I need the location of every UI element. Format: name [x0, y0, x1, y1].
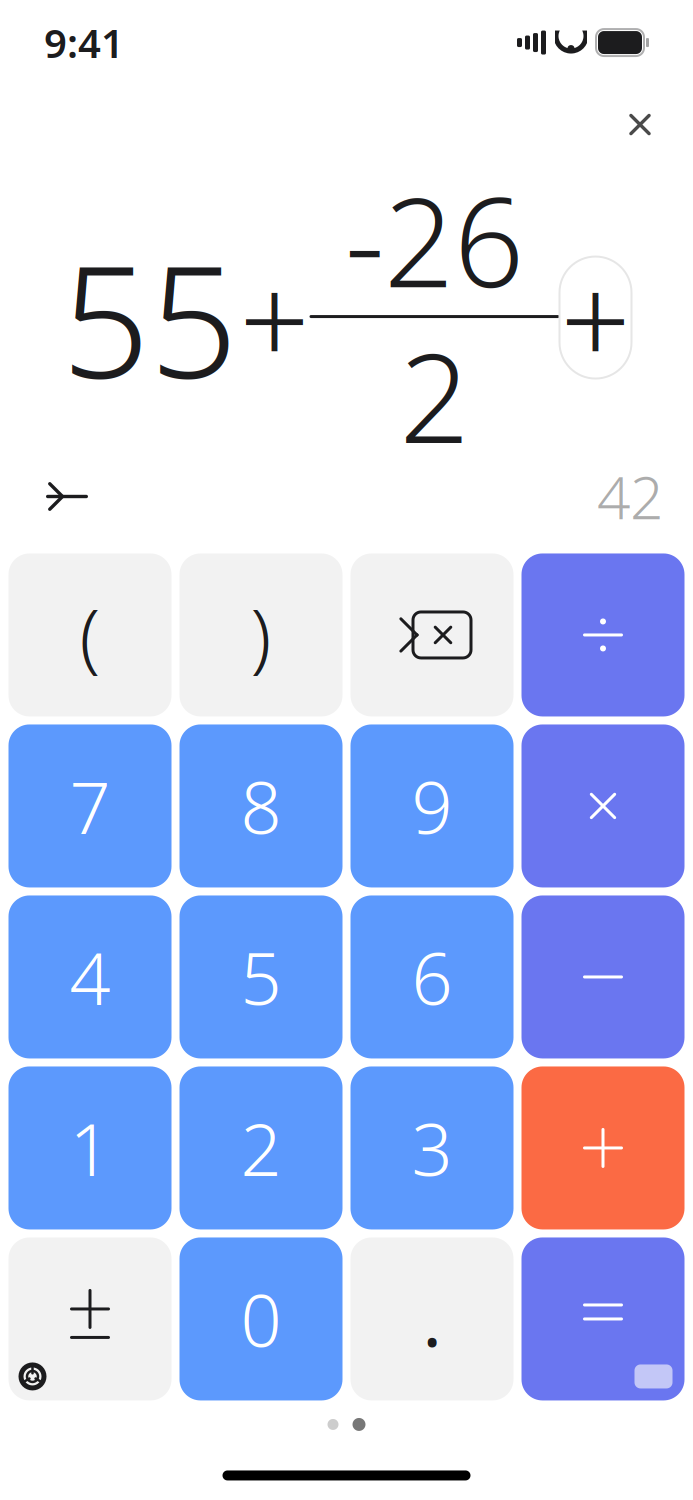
button[interactable]: Previous [30, 465, 104, 527]
button[interactable]: Multiply [521, 724, 684, 887]
staticText: 9:41 [44, 16, 124, 69]
staticText: 6 [411, 929, 452, 1025]
button[interactable]: 9 [350, 724, 513, 887]
staticText: 2 [240, 1100, 281, 1196]
button[interactable]: Close [609, 93, 671, 155]
button[interactable]: 5 [179, 895, 342, 1058]
button[interactable]: Plus [521, 1066, 684, 1229]
button[interactable]: ) [179, 553, 342, 716]
staticText: ( [79, 585, 100, 685]
button[interactable]: 1 [8, 1066, 171, 1229]
button[interactable]: 2 [179, 1066, 342, 1229]
button[interactable]: Delete [350, 553, 513, 716]
button[interactable]: 7 [8, 724, 171, 887]
staticText: 42 [597, 457, 663, 535]
button[interactable]: . [350, 1237, 513, 1400]
button[interactable]: Equals [521, 1237, 684, 1400]
staticText: 0 [240, 1271, 281, 1367]
button[interactable]: ( [8, 553, 171, 716]
button[interactable]: 0 [179, 1237, 342, 1400]
staticText: 8 [240, 758, 281, 854]
staticText: 9 [411, 758, 452, 854]
staticText: . [422, 1271, 441, 1367]
staticText: ) [250, 585, 271, 685]
button[interactable]: 8 [179, 724, 342, 887]
button[interactable]: 4 [8, 895, 171, 1058]
staticText: -26 [345, 158, 524, 321]
button[interactable]: Minus [521, 895, 684, 1058]
button[interactable]: 6 [350, 895, 513, 1058]
staticText: 4 [69, 929, 110, 1025]
staticText: 3 [411, 1100, 452, 1196]
staticText: 1 [69, 1100, 110, 1196]
staticText: + [239, 236, 309, 399]
staticText: + [560, 236, 630, 399]
staticText: 2 [399, 314, 469, 477]
staticText: 7 [69, 758, 110, 854]
button[interactable]: Plus or minus, settings [8, 1237, 171, 1400]
button[interactable]: 3 [350, 1066, 513, 1229]
staticText: 5 [240, 929, 281, 1025]
staticText: 55 [61, 215, 237, 420]
button[interactable]: Divide [521, 553, 684, 716]
